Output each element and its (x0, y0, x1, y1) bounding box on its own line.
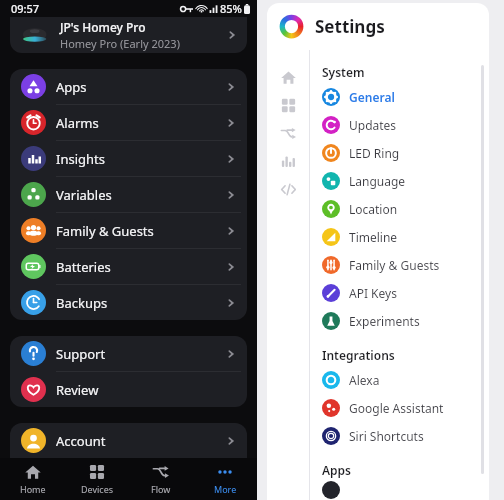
button[interactable]: Support (10, 336, 247, 371)
button[interactable]: Home (0, 458, 65, 500)
button[interactable]: Devices (65, 458, 129, 500)
staticText: Apps (322, 462, 352, 478)
staticText: 85% (220, 1, 242, 16)
staticText: Apps (56, 78, 224, 96)
button[interactable]: Flow (129, 458, 193, 500)
staticText: Backups (56, 294, 224, 312)
staticText: Family & Guests (56, 222, 224, 240)
button[interactable]: Flow (274, 119, 302, 147)
button[interactable]: Alarms (10, 105, 247, 140)
staticText: Language (349, 173, 406, 189)
button[interactable]: Backups (10, 285, 247, 320)
staticText: Flow (151, 483, 171, 495)
staticText: Integrations (322, 347, 395, 363)
button[interactable]: Account (10, 423, 247, 458)
button[interactable]: Devices (274, 91, 302, 119)
button[interactable]: More (193, 458, 257, 500)
staticText: Homey Pro (Early 2023) (60, 36, 180, 51)
staticText: Settings (315, 15, 385, 38)
button[interactable]: Location (322, 195, 489, 223)
button[interactable]: Timeline (322, 223, 489, 251)
staticText: Account (56, 432, 224, 450)
button[interactable]: Family & Guests (322, 251, 489, 279)
button[interactable]: Language (322, 167, 489, 195)
staticText: API Keys (349, 285, 397, 301)
button[interactable]: JP's Homey Pro (10, 17, 247, 53)
staticText: Variables (56, 186, 224, 204)
button[interactable]: Variables (10, 177, 247, 212)
staticText: Batteries (56, 258, 224, 276)
button[interactable]: Google Assistant (322, 394, 489, 422)
button[interactable]: General (322, 83, 489, 111)
button[interactable]: Alexa (322, 366, 489, 394)
staticText: Home (20, 483, 46, 495)
button[interactable]: API Keys (322, 279, 489, 307)
staticText: Timeline (349, 229, 398, 245)
staticText: General (349, 89, 395, 105)
staticText: Alexa (349, 372, 380, 388)
button[interactable]: Siri Shortcuts (322, 422, 489, 450)
staticText: Alarms (56, 114, 224, 132)
staticText: Support (56, 345, 224, 363)
staticText: Experiments (349, 313, 420, 329)
staticText: Google Assistant (349, 400, 444, 416)
staticText: Review (56, 381, 238, 399)
button[interactable]: Home (274, 63, 302, 91)
button[interactable]: Developer (274, 175, 302, 203)
button[interactable]: Review (10, 372, 247, 407)
button[interactable]: Family & Guests (10, 213, 247, 248)
staticText: Updates (349, 117, 397, 133)
button[interactable]: Insights (10, 141, 247, 176)
button[interactable]: LED Ring (322, 139, 489, 167)
button[interactable]: Updates (322, 111, 489, 139)
button[interactable]: Experiments (322, 307, 489, 335)
staticText: Family & Guests (349, 257, 440, 273)
staticText: Devices (81, 483, 114, 495)
button[interactable] (322, 481, 489, 500)
staticText: Location (349, 201, 398, 217)
button[interactable]: Insights (274, 147, 302, 175)
staticText: More (214, 483, 237, 495)
staticText: Siri Shortcuts (349, 428, 424, 444)
button[interactable]: Apps (10, 69, 247, 104)
staticText: LED Ring (349, 145, 400, 161)
staticText: System (322, 64, 365, 80)
staticText: JP's Homey Pro (60, 19, 146, 35)
button[interactable]: Batteries (10, 249, 247, 284)
staticText: Insights (56, 150, 224, 168)
staticText: 09:57 (11, 1, 40, 16)
